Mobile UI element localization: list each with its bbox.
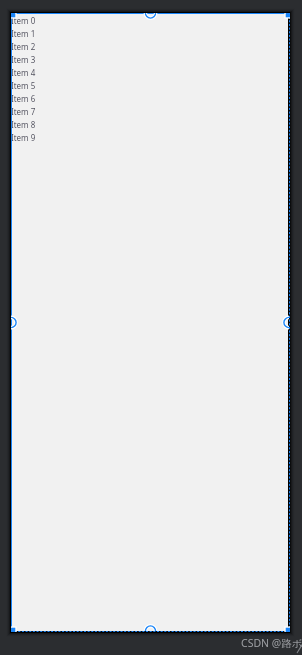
button[interactable]: Item 1 (12, 27, 288, 40)
staticText: Item 3 (11, 54, 36, 65)
button[interactable]: Item 2 (12, 40, 288, 53)
staticText: CSDN @路ボ (241, 636, 302, 650)
button[interactable]: Item 9 (12, 131, 288, 144)
button[interactable]: Item 8 (12, 118, 288, 131)
staticText: Item 6 (11, 93, 36, 104)
button[interactable]: Item 3 (12, 53, 288, 66)
button[interactable]: Item 0 (12, 14, 288, 27)
staticText: Item 2 (11, 41, 36, 52)
staticText: Item 1 (11, 28, 36, 39)
button[interactable]: Item 7 (12, 105, 288, 118)
staticText: Item 0 (11, 15, 36, 26)
button[interactable]: Item 5 (12, 79, 288, 92)
staticText: Item 4 (11, 67, 36, 78)
staticText: Item 5 (11, 80, 36, 91)
button[interactable]: Item 6 (12, 92, 288, 105)
staticText: Item 9 (11, 132, 36, 143)
staticText: Item 8 (11, 119, 36, 130)
staticText: Item 7 (11, 106, 36, 117)
button[interactable]: Item 4 (12, 66, 288, 79)
